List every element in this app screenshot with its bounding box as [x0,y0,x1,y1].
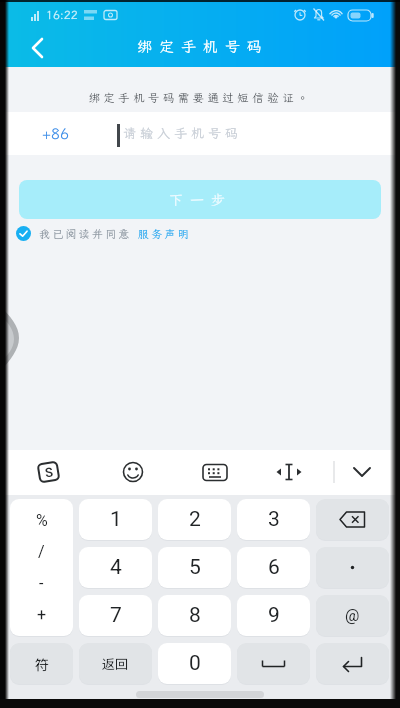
staticText: 6 [268,555,280,580]
staticText: 5 [189,555,201,580]
button[interactable] [200,457,230,487]
button[interactable] [0,27,44,67]
button[interactable]: 我已阅读并同意 [16,226,191,241]
button[interactable]: 6 [237,547,310,588]
staticText: % [36,511,48,530]
staticText: 8 [189,603,201,628]
staticText: 返回 [102,654,129,673]
button[interactable]: 4 [79,547,152,588]
button[interactable] [316,547,389,588]
button[interactable] [237,643,310,684]
button[interactable]: 2 [158,499,231,540]
button[interactable]: 符 [10,643,73,684]
button[interactable]: 1 [79,499,152,540]
button[interactable]: 下一步 [19,180,381,219]
staticText: 2 [189,507,201,532]
staticText: 下一步 [169,191,232,209]
staticText: 符 [35,654,49,674]
button[interactable] [316,643,389,684]
button[interactable]: 返回 [79,643,152,684]
staticText: 3 [268,507,280,532]
staticText: 我已阅读并同意 [39,227,132,241]
button[interactable]: S [37,460,60,483]
staticText: + [37,605,47,624]
button[interactable]: 7 [79,595,152,636]
staticText: S [44,464,54,480]
staticText: 4 [110,555,122,580]
button[interactable]: 3 [237,499,310,540]
staticText: 服务声明 [132,227,191,241]
staticText: / [38,542,45,561]
staticText: @ [345,606,360,625]
button[interactable]: +86 [42,124,70,144]
staticText: 16:22 [46,7,78,22]
button[interactable] [347,457,377,487]
button[interactable] [118,457,148,487]
button[interactable] [316,499,389,540]
button[interactable]: 0 [158,643,231,684]
staticText: 9 [268,603,280,628]
staticText: 请输入手机号码 [123,125,243,142]
staticText: 1 [110,507,122,532]
button[interactable]: 9 [237,595,310,636]
staticText: 7 [110,603,122,628]
staticText: 绑定手机号码 [3,37,400,57]
button[interactable]: 5 [158,547,231,588]
button[interactable] [274,457,304,487]
button[interactable]: @ [316,595,389,636]
staticText: - [39,574,44,593]
staticText: 0 [189,651,201,676]
staticText: 绑定手机号码需要通过短信验证。 [0,90,400,105]
button[interactable]: 8 [158,595,231,636]
button[interactable]: % [10,499,73,636]
